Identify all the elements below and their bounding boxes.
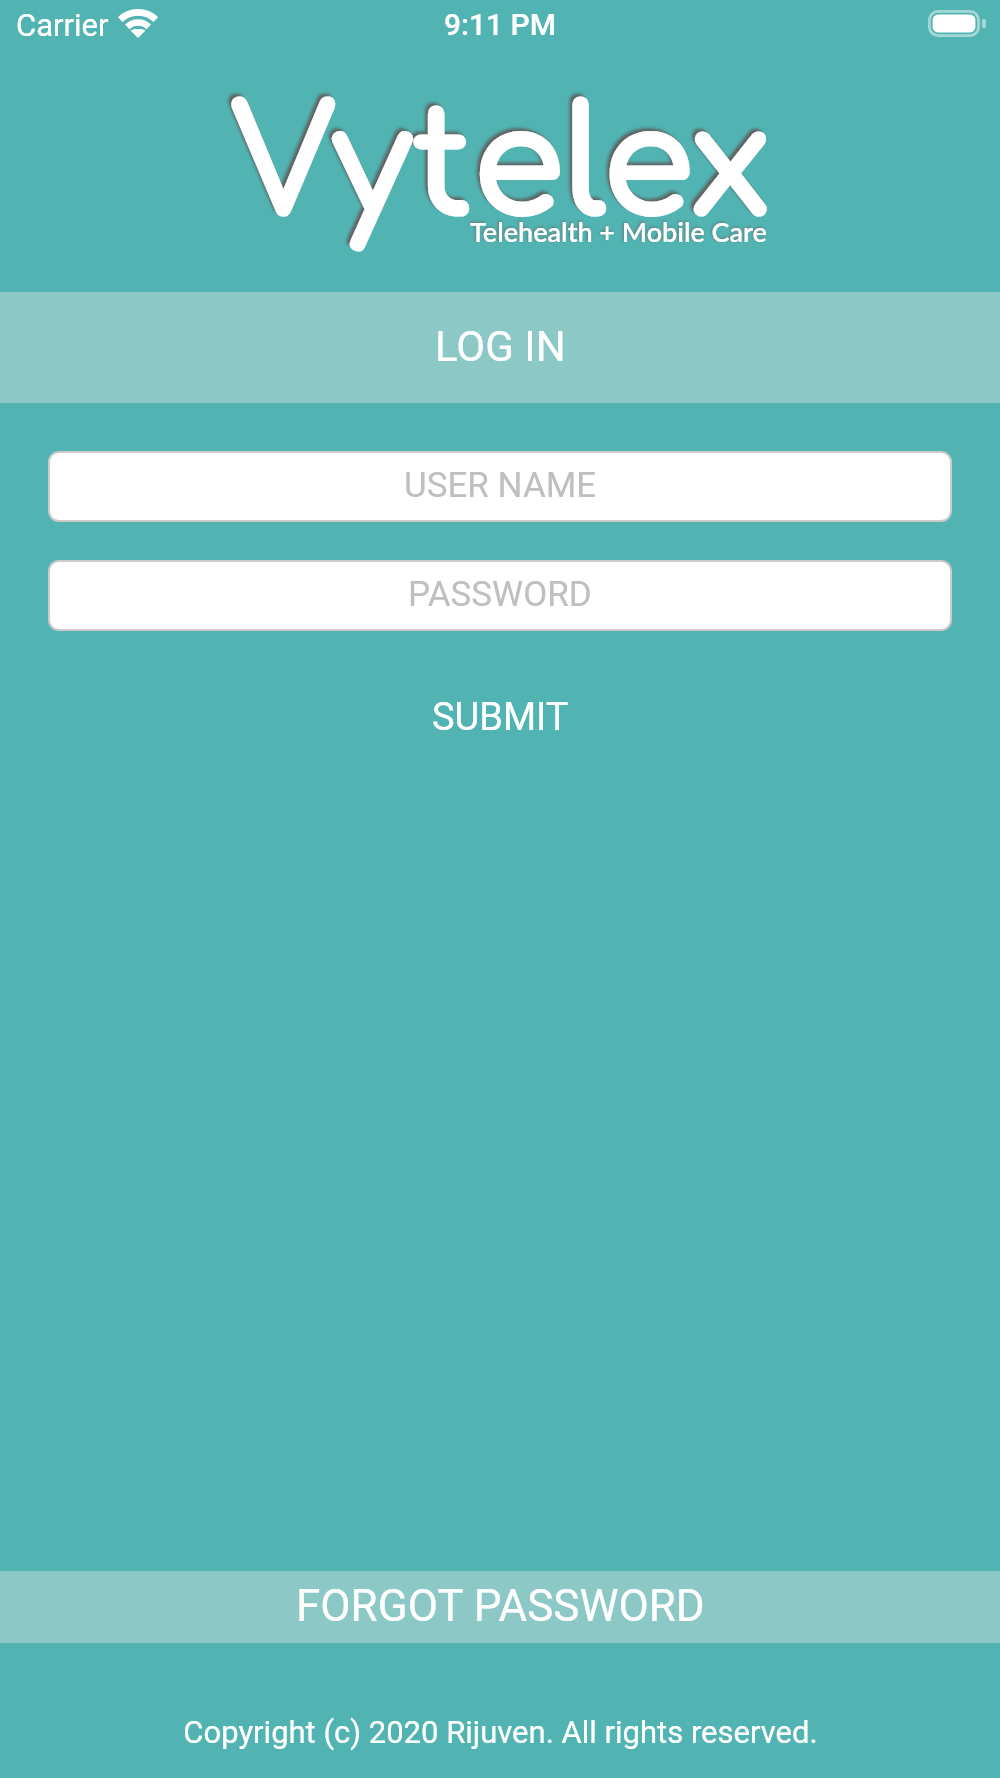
staticText: Vytelex [228, 82, 770, 245]
staticText: Telehealth + Mobile Care [469, 214, 766, 246]
button[interactable]: LOG IN [0, 292, 1000, 403]
staticText: Copyright (c) 2020 Rijuven. All rights r… [183, 1714, 818, 1750]
staticText: 9:11 PM [444, 7, 557, 42]
staticText: Vytelex [231, 85, 773, 248]
staticText: FORGOT PASSWORD [296, 1580, 705, 1632]
button[interactable]: PASSWORD [50, 562, 950, 629]
button[interactable]: USER NAME [50, 453, 950, 520]
staticText: USER NAME [404, 465, 597, 506]
staticText: PASSWORD [408, 574, 592, 615]
staticText: Vytelex [231, 85, 773, 248]
staticText: Carrier [16, 7, 109, 43]
staticText: Telehealth + Mobile Care [470, 215, 767, 247]
staticText: LOG IN [435, 322, 566, 371]
staticText: Vytelex [228, 82, 770, 245]
other: Wi-Fi signal [119, 9, 157, 38]
button[interactable]: SUBMIT [0, 686, 1000, 748]
button[interactable]: FORGOT PASSWORD [0, 1571, 1000, 1643]
staticText: SUBMIT [432, 695, 569, 740]
other: Battery full [928, 10, 987, 37]
